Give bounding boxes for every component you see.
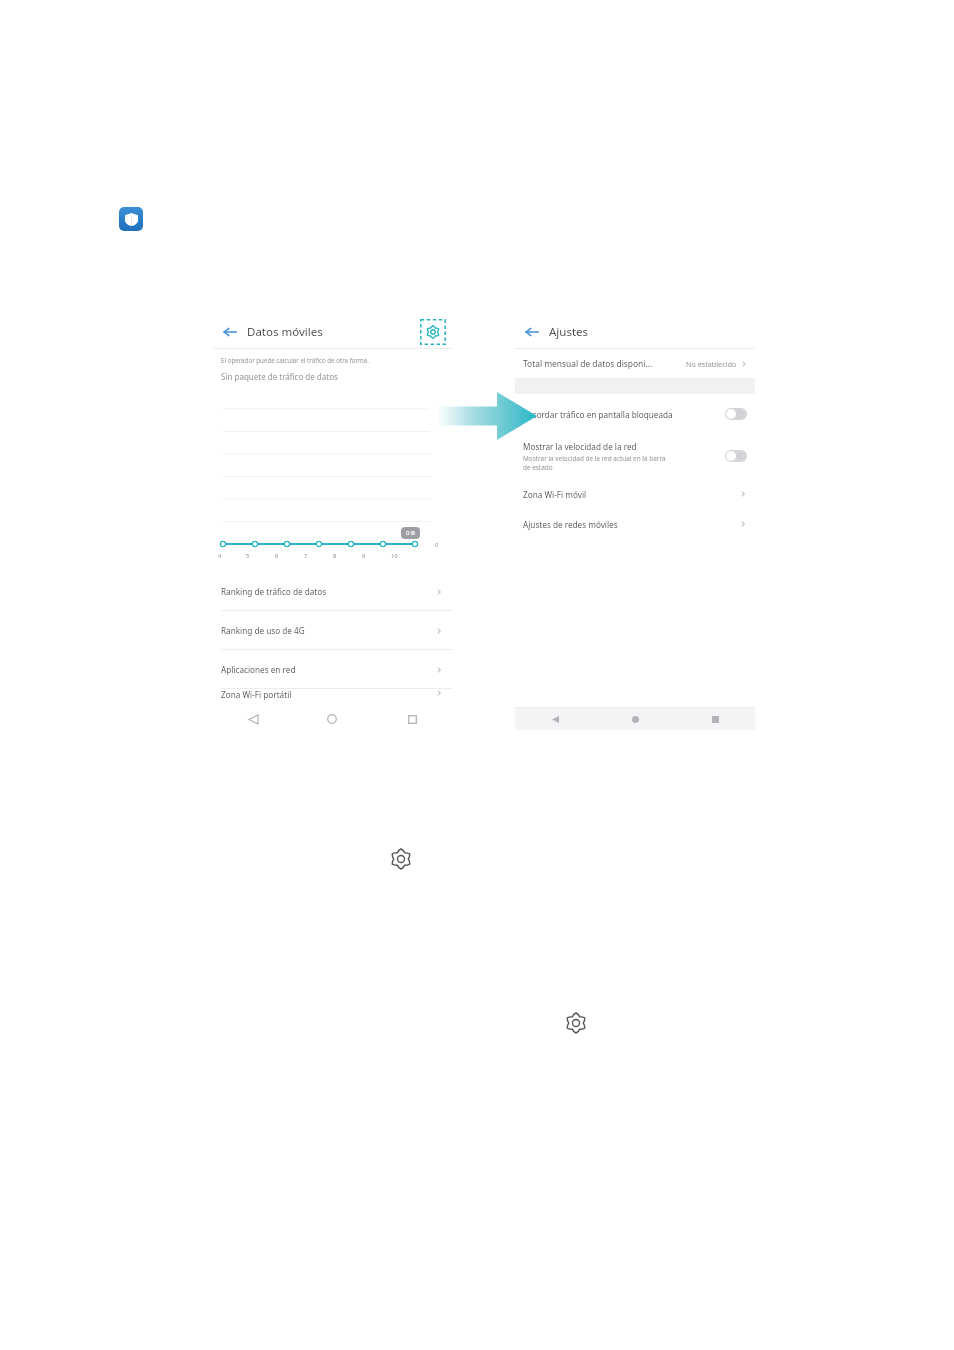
button[interactable]: Ranking de uso de 4G [213, 611, 452, 650]
staticText: Recordar tráfico en pantalla bloqueada [523, 409, 673, 420]
staticText: 7 [304, 552, 308, 560]
button[interactable]: Ranking de tráfico de datos [213, 572, 452, 611]
button[interactable]: Back [546, 710, 564, 728]
button[interactable]: Zona Wi-Fi portátil [213, 689, 452, 701]
staticText: Datos móviles [247, 324, 323, 340]
staticText: 4 [218, 552, 222, 560]
button[interactable]: Back [522, 322, 542, 342]
staticText: Ranking de tráfico de datos [221, 586, 327, 597]
button[interactable]: Settings [420, 319, 446, 345]
staticText: El operador puede calcular el tráfico de… [221, 356, 369, 364]
button[interactable]: Recents [403, 710, 421, 728]
staticText: Zona Wi-Fi portátil [221, 689, 292, 700]
button[interactable]: Mostrar la velocidad de la red [515, 435, 755, 477]
button[interactable]: Back [244, 710, 262, 728]
button[interactable]: Zona Wi-Fi móvil [515, 479, 755, 509]
staticText: 0 B [406, 529, 415, 537]
staticText: Mostrar la velocidad de la red actual en… [523, 454, 673, 472]
button[interactable]: Security app [119, 207, 143, 231]
staticText: Total mensual de datos disponi... [523, 358, 653, 369]
staticText: 6 [275, 552, 279, 560]
button[interactable]: Toggle [725, 408, 747, 420]
button[interactable]: Home [626, 710, 644, 728]
button[interactable]: Recents [706, 710, 724, 728]
button[interactable]: Home [323, 710, 341, 728]
button[interactable]: Total mensual de datos disponi... [515, 349, 755, 378]
staticText: No establecido [686, 359, 737, 369]
button[interactable]: Back [220, 322, 240, 342]
staticText: Aplicaciones en red [221, 664, 296, 675]
staticText: Zona Wi-Fi móvil [523, 489, 587, 500]
staticText: 10 [391, 552, 398, 560]
button[interactable]: Aplicaciones en red [213, 650, 452, 689]
staticText: 0 [435, 541, 439, 549]
staticText: 8 [333, 552, 337, 560]
staticText: Sin paquete de tráfico de datos [221, 371, 338, 382]
staticText: 5 [246, 552, 250, 560]
staticText: Ajustes [549, 324, 589, 340]
staticText: Mostrar la velocidad de la red [523, 441, 637, 452]
staticText: Ajustes de redes móviles [523, 519, 618, 530]
button[interactable]: Ajustes de redes móviles [515, 509, 755, 539]
button[interactable]: Recordar tráfico en pantalla bloqueada [515, 401, 755, 427]
button[interactable]: Toggle [725, 450, 747, 462]
staticText: Ranking de uso de 4G [221, 625, 305, 636]
staticText: 9 [362, 552, 366, 560]
